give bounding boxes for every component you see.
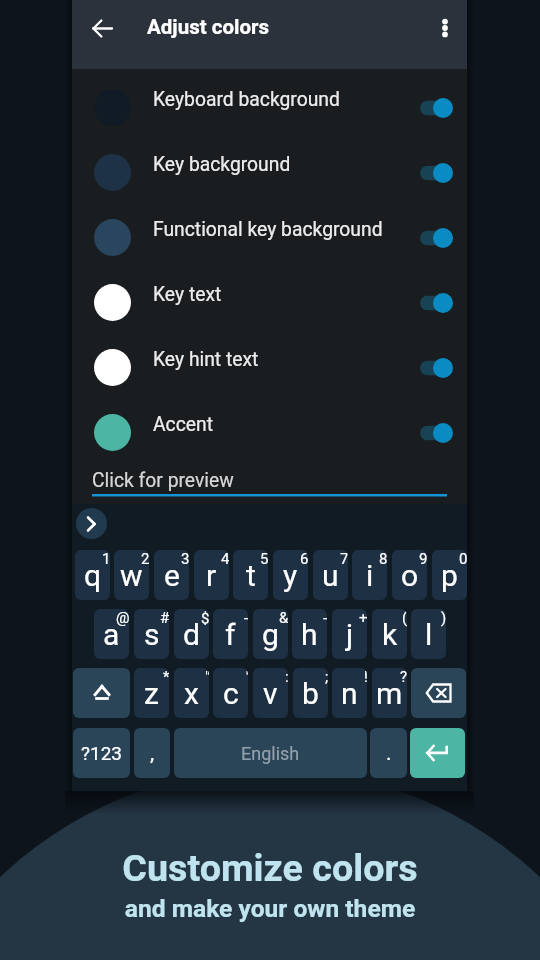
staticText: . (386, 741, 392, 766)
button[interactable]: m (372, 668, 407, 718)
staticText: Customize colors (0, 846, 540, 890)
staticText: @ (116, 609, 129, 627)
staticText: r (206, 558, 217, 593)
button[interactable]: e (154, 550, 189, 600)
button[interactable]: Toggle (412, 160, 454, 186)
staticText: g (262, 617, 279, 652)
button[interactable]: o (392, 550, 427, 600)
button[interactable]: r (194, 550, 229, 600)
staticText: q (84, 558, 102, 593)
staticText: 3 (181, 550, 189, 568)
button[interactable]: l (411, 609, 446, 659)
button[interactable]: Toggle (412, 290, 454, 316)
button[interactable]: g (253, 609, 288, 659)
staticText: 9 (419, 550, 427, 568)
button[interactable]: English (174, 728, 367, 778)
button[interactable]: Functional key background (72, 205, 467, 270)
staticText: * (163, 668, 169, 686)
staticText: # (160, 609, 169, 627)
button[interactable]: j (332, 609, 367, 659)
button[interactable]: p (432, 550, 467, 600)
staticText: f (225, 617, 236, 652)
staticText: 5 (260, 550, 268, 568)
staticText: 4 (221, 550, 229, 568)
staticText: w (120, 558, 143, 593)
staticText: ) (441, 609, 446, 627)
staticText: ? (400, 668, 407, 686)
button[interactable]: w (114, 550, 149, 600)
staticText: m (376, 676, 403, 711)
button[interactable]: Backspace (411, 668, 466, 718)
staticText: j (346, 617, 354, 652)
button[interactable]: Enter (410, 728, 465, 778)
staticText: Functional key background (153, 218, 383, 241)
staticText: 2 (141, 550, 149, 568)
staticText: Accent (153, 413, 213, 436)
staticText: : (285, 668, 288, 686)
button[interactable]: n (332, 668, 367, 718)
staticText: and make your own theme (0, 894, 540, 923)
button[interactable]: Key hint text (72, 335, 467, 400)
button[interactable]: Toggle (412, 95, 454, 121)
staticText: 6 (300, 550, 308, 568)
staticText: i (366, 558, 374, 593)
staticText: + (359, 609, 367, 627)
button[interactable]: i (352, 550, 387, 600)
button[interactable]: h (292, 609, 327, 659)
staticText: ?123 (81, 742, 123, 764)
staticText: t (246, 558, 256, 593)
button[interactable]: y (273, 550, 308, 600)
button[interactable]: Key background (72, 140, 467, 205)
button[interactable]: z (134, 668, 169, 718)
button[interactable]: Symbols (73, 728, 130, 778)
staticText: - (244, 609, 248, 627)
button[interactable]: Shift (73, 668, 130, 718)
staticText: y (283, 558, 298, 593)
button[interactable]: Click for preview (72, 460, 467, 502)
button[interactable]: a (94, 609, 129, 659)
staticText: s (144, 617, 160, 652)
staticText: h (301, 617, 318, 652)
button[interactable]: Toggle (412, 355, 454, 381)
staticText: Adjust colors (147, 15, 270, 39)
button[interactable]: t (233, 550, 268, 600)
staticText: ; (325, 668, 328, 686)
button[interactable]: q (75, 550, 110, 600)
button[interactable]: More options (422, 5, 468, 51)
staticText: 7 (340, 550, 348, 568)
button[interactable]: Key text (72, 270, 467, 335)
button[interactable]: Back (79, 5, 125, 51)
button[interactable]: Accent (72, 400, 467, 465)
button[interactable]: s (134, 609, 169, 659)
staticText: u (322, 558, 339, 593)
staticText: Key background (153, 153, 291, 176)
staticText: n (341, 676, 358, 711)
staticText: 8 (379, 550, 387, 568)
button[interactable]: v (253, 668, 288, 718)
button[interactable]: Toggle (412, 420, 454, 446)
button[interactable]: d (174, 609, 209, 659)
staticText: $ (201, 609, 209, 627)
staticText: l (425, 617, 433, 652)
button[interactable]: Comma (134, 728, 170, 778)
button[interactable]: k (372, 609, 407, 659)
button[interactable]: Expand suggestions (76, 508, 107, 539)
staticText: " (205, 668, 209, 686)
staticText: o (401, 558, 419, 593)
staticText: k (382, 617, 398, 652)
button[interactable]: u (313, 550, 348, 600)
staticText: ! (364, 668, 367, 686)
button[interactable]: x (174, 668, 209, 718)
button[interactable]: f (213, 609, 248, 659)
staticText: & (279, 609, 288, 627)
button[interactable]: Period (370, 728, 407, 778)
button[interactable]: b (293, 668, 328, 718)
button[interactable]: Toggle (412, 225, 454, 251)
staticText: ( (402, 609, 407, 627)
staticText: b (302, 676, 319, 711)
staticText: , (150, 741, 155, 766)
staticText: d (183, 617, 200, 652)
button[interactable]: c (213, 668, 248, 718)
button[interactable]: Keyboard background (72, 75, 467, 140)
staticText: Keyboard background (153, 88, 340, 111)
